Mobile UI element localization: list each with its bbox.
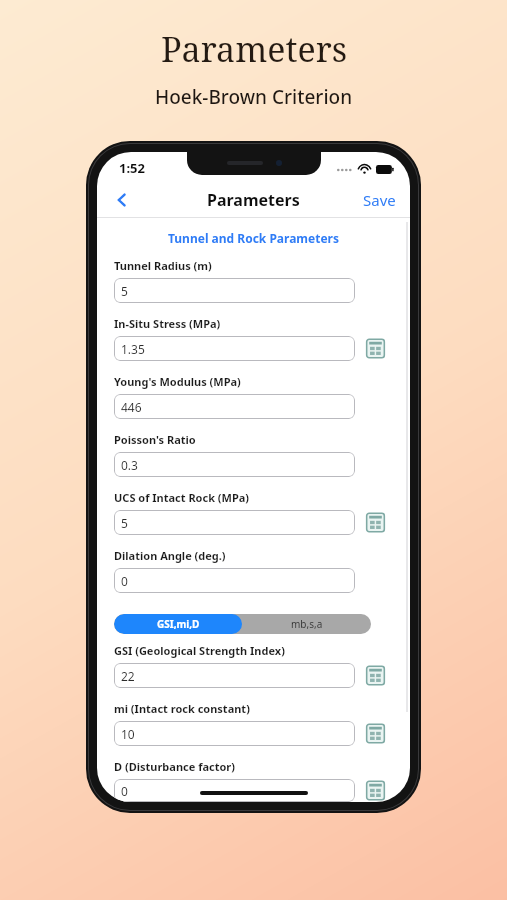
- button[interactable]: 22: [114, 663, 355, 688]
- staticText: 1.35: [121, 341, 145, 357]
- staticText: Save: [363, 190, 396, 210]
- button[interactable]: 1.35: [114, 336, 355, 361]
- button[interactable]: 5: [114, 510, 355, 535]
- staticText: 0.3: [121, 457, 138, 473]
- button[interactable]: mb,s,a: [242, 614, 371, 634]
- button[interactable]: Calculator: [364, 779, 387, 802]
- button[interactable]: Calculator: [364, 722, 387, 745]
- button[interactable]: 5: [114, 278, 355, 303]
- button[interactable]: Calculator: [364, 664, 387, 687]
- staticText: 10: [121, 726, 135, 742]
- staticText: UCS of Intact Rock (MPa): [114, 490, 250, 505]
- staticText: 446: [121, 399, 142, 415]
- button[interactable]: Calculator: [364, 337, 387, 360]
- staticText: GSI (Geological Strength Index): [114, 643, 285, 658]
- staticText: Young's Modulus (MPa): [114, 374, 241, 389]
- staticText: In-Situ Stress (MPa): [114, 316, 221, 331]
- staticText: 1:52: [119, 159, 145, 177]
- staticText: Poisson's Ratio: [114, 432, 196, 447]
- staticText: Parameters: [161, 26, 347, 72]
- staticText: mi (Intact rock constant): [114, 701, 250, 716]
- button[interactable]: Back: [105, 183, 139, 217]
- staticText: 0: [121, 573, 128, 589]
- staticText: mb,s,a: [291, 617, 323, 631]
- button[interactable]: Save: [349, 184, 410, 216]
- button[interactable]: GSI,mi,D: [114, 614, 242, 634]
- staticText: 5: [121, 283, 128, 299]
- button[interactable]: Calculator: [364, 511, 387, 534]
- staticText: Tunnel Radius (m): [114, 258, 212, 273]
- staticText: 22: [121, 668, 135, 684]
- button[interactable]: 0: [114, 568, 355, 593]
- button[interactable]: 446: [114, 394, 355, 419]
- staticText: 5: [121, 515, 128, 531]
- staticText: GSI,mi,D: [157, 617, 200, 631]
- staticText: Dilation Angle (deg.): [114, 548, 226, 563]
- staticText: Tunnel and Rock Parameters: [168, 230, 339, 246]
- button[interactable]: 0: [114, 779, 355, 802]
- staticText: 0: [121, 783, 128, 799]
- staticText: D (Disturbance factor): [114, 759, 235, 774]
- button[interactable]: 10: [114, 721, 355, 746]
- staticText: Hoek-Brown Criterion: [155, 84, 353, 110]
- button[interactable]: 0.3: [114, 452, 355, 477]
- staticText: Parameters: [207, 189, 300, 211]
